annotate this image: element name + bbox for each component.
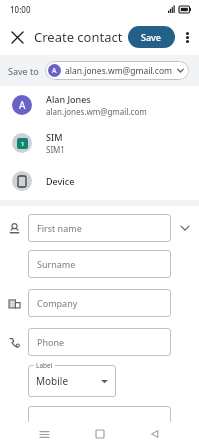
staticText: 10:00 xyxy=(10,4,31,15)
button[interactable]: A xyxy=(45,61,189,80)
button[interactable]: Surname xyxy=(28,250,171,278)
button[interactable]: Company xyxy=(28,289,171,317)
staticText: Company xyxy=(37,297,78,309)
staticText: 1 xyxy=(21,140,25,148)
staticText: A xyxy=(19,98,26,112)
button[interactable]: Device xyxy=(0,162,199,200)
button[interactable]: 1 xyxy=(0,124,199,162)
staticText: Save xyxy=(141,31,162,43)
staticText: Device xyxy=(46,175,75,187)
button[interactable]: Back xyxy=(144,423,166,445)
staticText: First name xyxy=(37,222,82,234)
staticText: A xyxy=(52,66,57,76)
staticText: Mobile xyxy=(36,374,69,388)
staticText: Label xyxy=(36,361,53,370)
button[interactable]: Save xyxy=(128,26,175,48)
button[interactable]: A xyxy=(0,86,199,124)
button[interactable] xyxy=(28,365,116,397)
staticText: Phone xyxy=(37,336,65,348)
staticText: Surname xyxy=(37,258,76,270)
staticText: alan.jones.wm@gmail.com xyxy=(65,65,173,77)
staticText: Create contact xyxy=(34,28,123,46)
button[interactable]: Home xyxy=(89,423,111,445)
button[interactable]: Phone xyxy=(28,328,171,356)
button[interactable]: More options xyxy=(176,26,198,48)
staticText: Save to xyxy=(8,65,39,77)
staticText: SIM1 xyxy=(46,144,65,155)
staticText: Alan Jones xyxy=(46,93,91,105)
button[interactable] xyxy=(28,406,171,434)
staticText: alan.jones.wm@gmail.com xyxy=(46,106,147,117)
button[interactable]: Recents xyxy=(33,423,55,445)
button[interactable]: Expand name fields xyxy=(171,223,199,233)
button[interactable]: Close xyxy=(4,24,30,50)
staticText: SIM xyxy=(46,131,63,143)
button[interactable]: First name xyxy=(28,214,171,242)
